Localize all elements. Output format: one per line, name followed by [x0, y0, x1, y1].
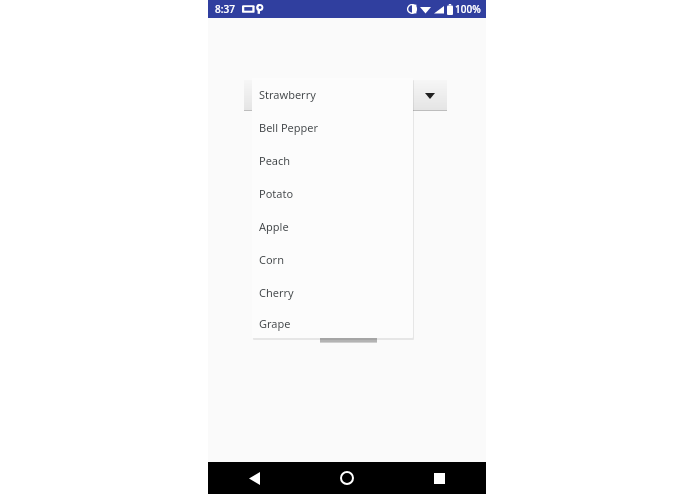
staticText: 8:37: [215, 2, 235, 16]
button[interactable]: Select fruit: [244, 80, 447, 111]
staticText: Cherry: [259, 285, 294, 300]
staticText: Apple: [259, 219, 289, 234]
button[interactable]: Grape: [252, 309, 413, 338]
button[interactable]: Bell Pepper: [252, 111, 413, 144]
staticText: Peach: [259, 153, 291, 168]
button[interactable]: Back: [208, 462, 300, 494]
staticText: Grape: [259, 316, 291, 331]
button[interactable]: Peach: [252, 144, 413, 177]
button[interactable]: Strawberry: [252, 78, 413, 111]
button[interactable]: Corn: [252, 243, 413, 276]
button[interactable]: Potato: [252, 177, 413, 210]
staticText: Corn: [259, 252, 284, 267]
staticText: 100%: [455, 2, 481, 16]
staticText: Strawberry: [259, 87, 316, 102]
button[interactable]: Cherry: [252, 276, 413, 309]
button[interactable]: Recent apps: [393, 462, 486, 494]
staticText: Bell Pepper: [259, 120, 319, 135]
button[interactable]: Home: [300, 462, 393, 494]
button[interactable]: Apple: [252, 210, 413, 243]
staticText: Potato: [259, 186, 294, 201]
